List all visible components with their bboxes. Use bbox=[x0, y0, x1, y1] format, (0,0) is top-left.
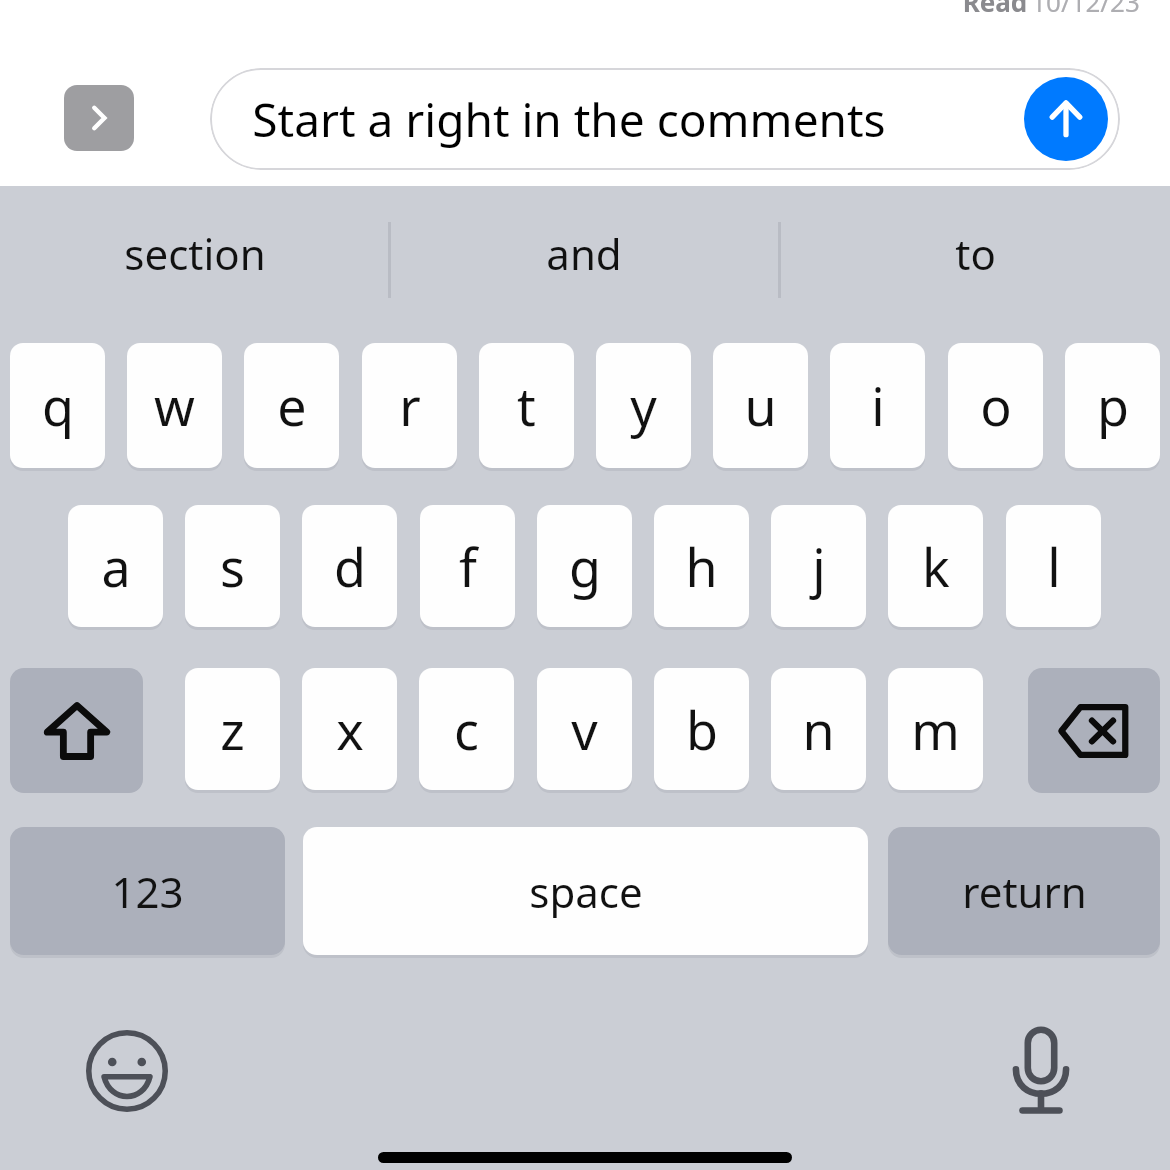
staticText: h bbox=[685, 531, 718, 602]
button[interactable]: to bbox=[785, 208, 1165, 298]
button[interactable]: g bbox=[537, 505, 632, 627]
button[interactable]: 123 bbox=[10, 827, 285, 955]
button[interactable]: v bbox=[537, 668, 632, 790]
button[interactable]: c bbox=[419, 668, 514, 790]
button[interactable]: h bbox=[654, 505, 749, 627]
button[interactable]: Expand bbox=[64, 85, 134, 151]
button[interactable]: s bbox=[185, 505, 280, 627]
staticText: u bbox=[744, 370, 777, 441]
button[interactable]: o bbox=[948, 343, 1043, 468]
button[interactable]: Dictation bbox=[988, 1018, 1094, 1124]
button[interactable]: and bbox=[394, 208, 774, 298]
button[interactable]: Shift bbox=[10, 668, 143, 793]
staticText: i bbox=[871, 370, 885, 441]
staticText: l bbox=[1047, 531, 1061, 602]
button[interactable]: i bbox=[830, 343, 925, 468]
staticText: s bbox=[220, 531, 245, 602]
button[interactable]: x bbox=[302, 668, 397, 790]
staticText: and bbox=[546, 225, 622, 282]
staticText: m bbox=[911, 694, 960, 765]
staticText: v bbox=[571, 694, 598, 765]
staticText: to bbox=[955, 225, 996, 282]
button[interactable]: d bbox=[302, 505, 397, 627]
button[interactable]: section bbox=[5, 208, 385, 298]
button[interactable]: r bbox=[362, 343, 457, 468]
staticText: o bbox=[980, 370, 1012, 441]
button[interactable]: b bbox=[654, 668, 749, 790]
staticText: c bbox=[454, 694, 479, 765]
staticText: 123 bbox=[111, 863, 184, 920]
staticText: space bbox=[529, 863, 643, 920]
staticText: 10/12/23 bbox=[1031, 0, 1140, 19]
button[interactable]: Send bbox=[1024, 77, 1108, 161]
staticText: j bbox=[812, 531, 826, 602]
button[interactable]: e bbox=[244, 343, 339, 468]
staticText: z bbox=[220, 694, 245, 765]
button[interactable]: u bbox=[713, 343, 808, 468]
staticText: Read bbox=[959, 0, 1031, 19]
button[interactable]: space bbox=[303, 827, 868, 955]
button[interactable]: Emoji bbox=[74, 1018, 180, 1124]
staticText: Start a right in the comments bbox=[252, 88, 886, 151]
staticText: d bbox=[334, 531, 366, 602]
button[interactable]: n bbox=[771, 668, 866, 790]
button[interactable]: m bbox=[888, 668, 983, 790]
staticText: n bbox=[802, 694, 835, 765]
staticText: t bbox=[517, 370, 536, 441]
staticText: p bbox=[1097, 370, 1129, 441]
staticText: r bbox=[399, 370, 421, 441]
staticText: q bbox=[42, 370, 74, 441]
staticText: g bbox=[569, 531, 601, 602]
button[interactable]: z bbox=[185, 668, 280, 790]
button[interactable]: t bbox=[479, 343, 574, 468]
button[interactable]: k bbox=[888, 505, 983, 627]
button[interactable]: j bbox=[771, 505, 866, 627]
button[interactable]: p bbox=[1065, 343, 1160, 468]
button[interactable]: y bbox=[596, 343, 691, 468]
button[interactable]: return bbox=[888, 827, 1160, 955]
button[interactable]: q bbox=[10, 343, 105, 468]
button[interactable]: Start a right in the comments bbox=[210, 68, 1120, 170]
staticText: w bbox=[154, 370, 195, 441]
staticText: b bbox=[686, 694, 718, 765]
staticText: f bbox=[459, 531, 477, 602]
button[interactable]: w bbox=[127, 343, 222, 468]
staticText: y bbox=[630, 370, 657, 441]
button[interactable]: Backspace bbox=[1028, 668, 1160, 793]
staticText: return bbox=[962, 863, 1087, 920]
button[interactable]: f bbox=[420, 505, 515, 627]
button[interactable]: l bbox=[1006, 505, 1101, 627]
staticText: e bbox=[277, 370, 307, 441]
staticText: k bbox=[922, 531, 950, 602]
button[interactable]: a bbox=[68, 505, 163, 627]
staticText: x bbox=[336, 694, 364, 765]
staticText: section bbox=[124, 225, 266, 282]
staticText: a bbox=[101, 531, 131, 602]
